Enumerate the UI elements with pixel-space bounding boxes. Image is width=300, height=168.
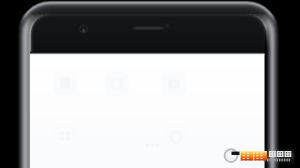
other: Smartphone product photo xyxy=(0,0,300,168)
